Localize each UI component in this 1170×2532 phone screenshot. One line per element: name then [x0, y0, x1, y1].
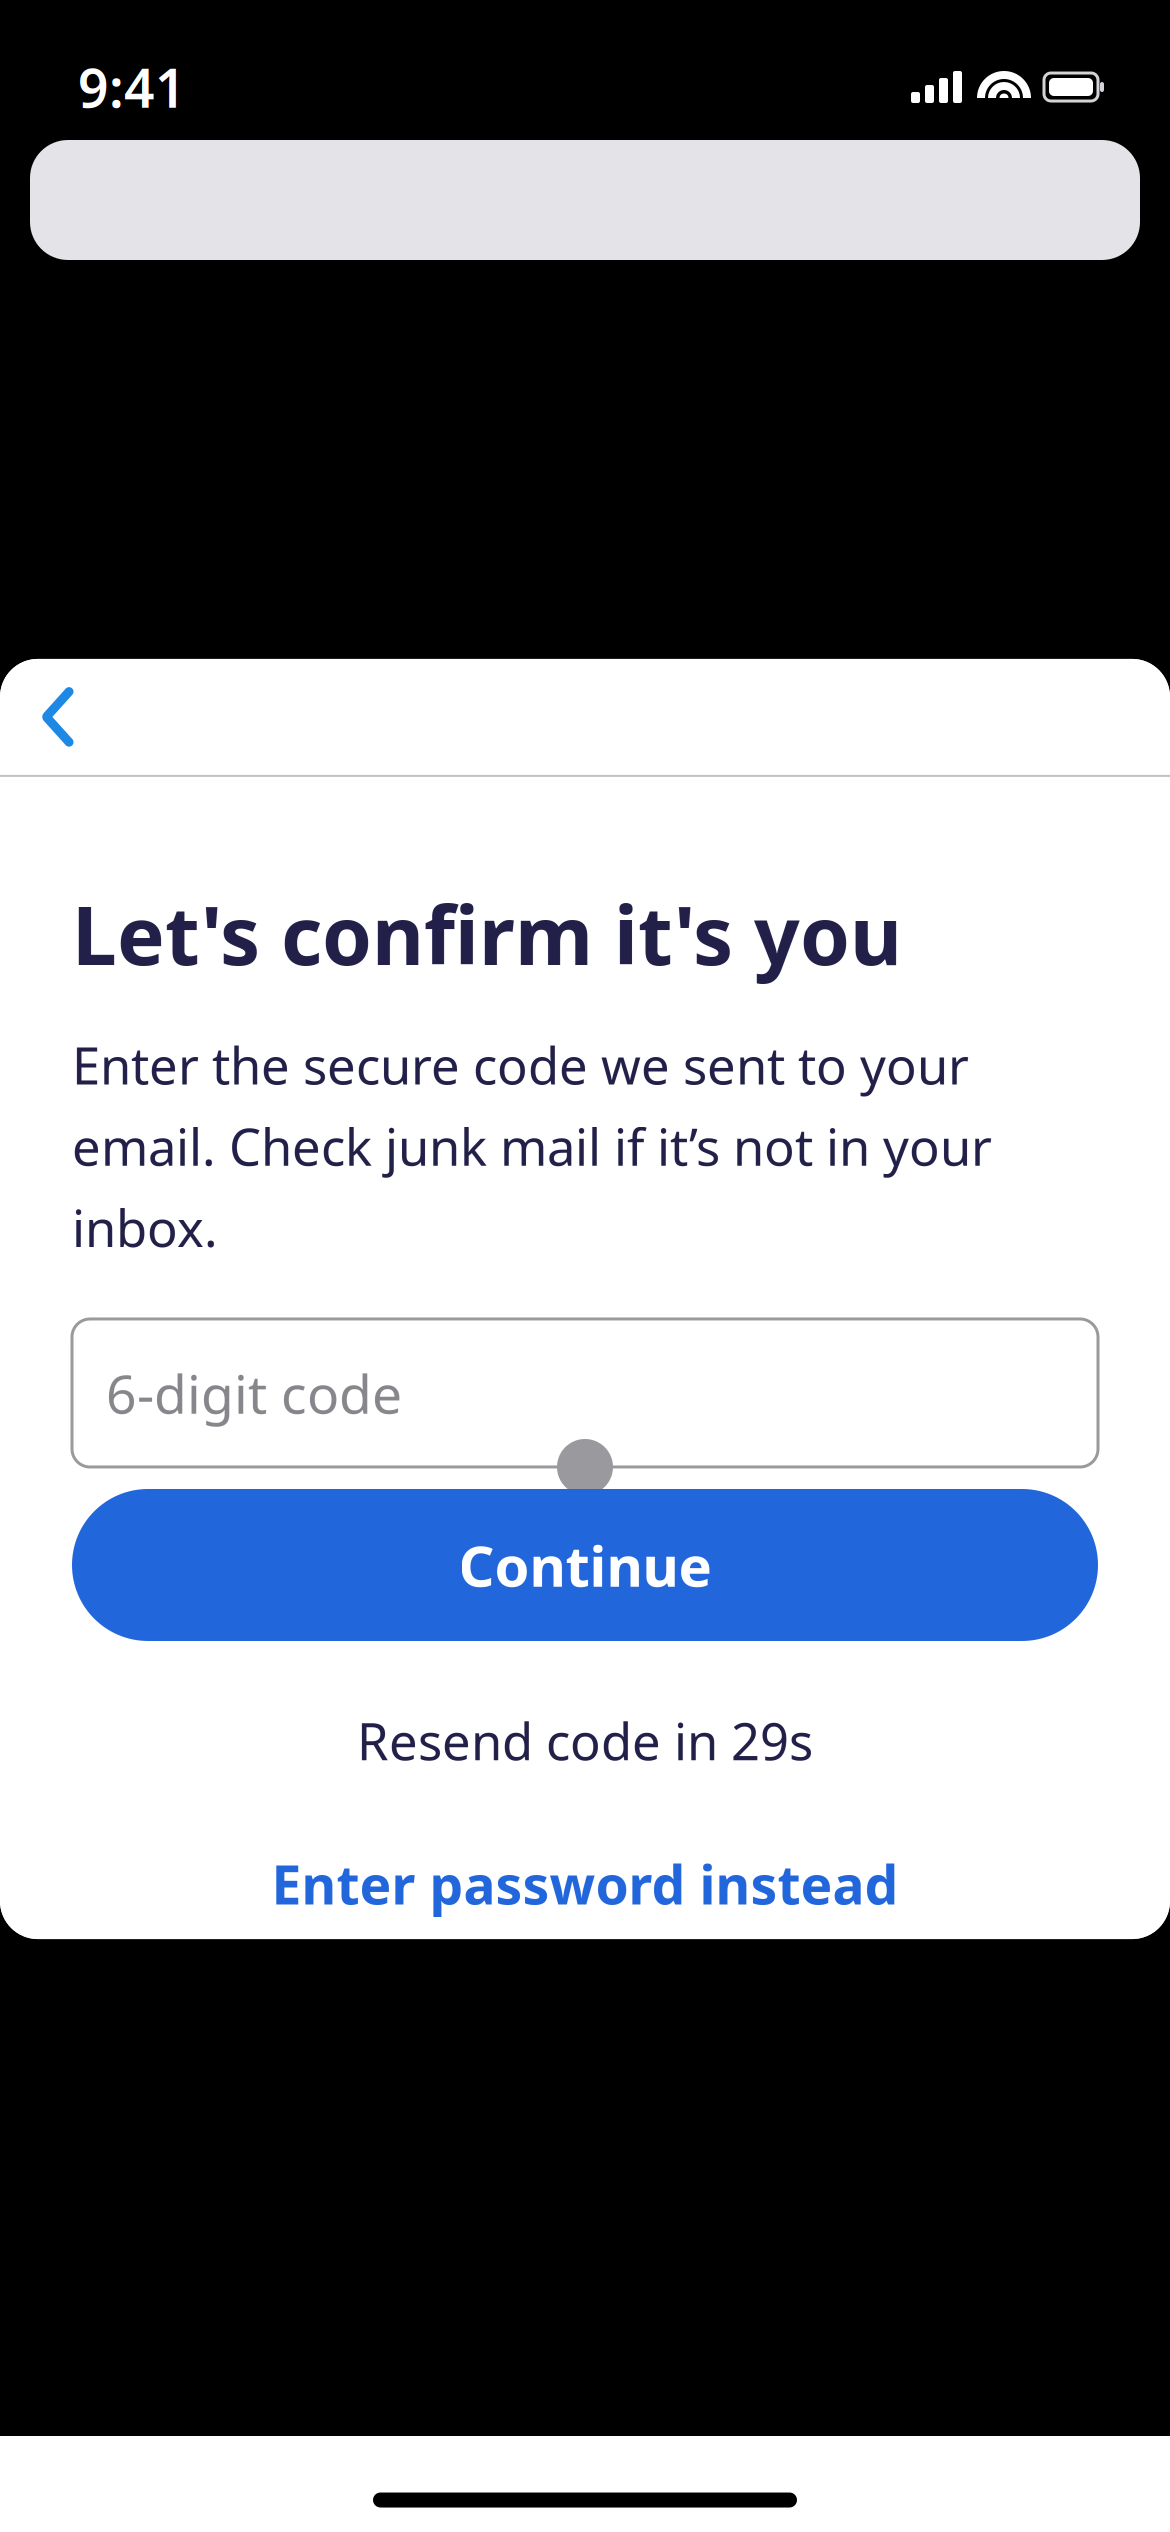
- staticText: Resend code in 29s: [357, 1707, 813, 1774]
- button[interactable]: Enter password instead: [72, 1836, 1098, 1931]
- button[interactable]: Continue: [72, 1489, 1098, 1641]
- staticText: Enter the secure code we sent to your em…: [72, 1031, 992, 1261]
- button[interactable]: Back: [10, 669, 106, 765]
- staticText: 9:41: [78, 52, 186, 122]
- staticText: Continue: [458, 1528, 711, 1602]
- staticText: 6-digit code: [106, 1358, 402, 1428]
- staticText: Let's confirm it's you: [72, 881, 902, 987]
- staticText: Enter password instead: [271, 1848, 898, 1919]
